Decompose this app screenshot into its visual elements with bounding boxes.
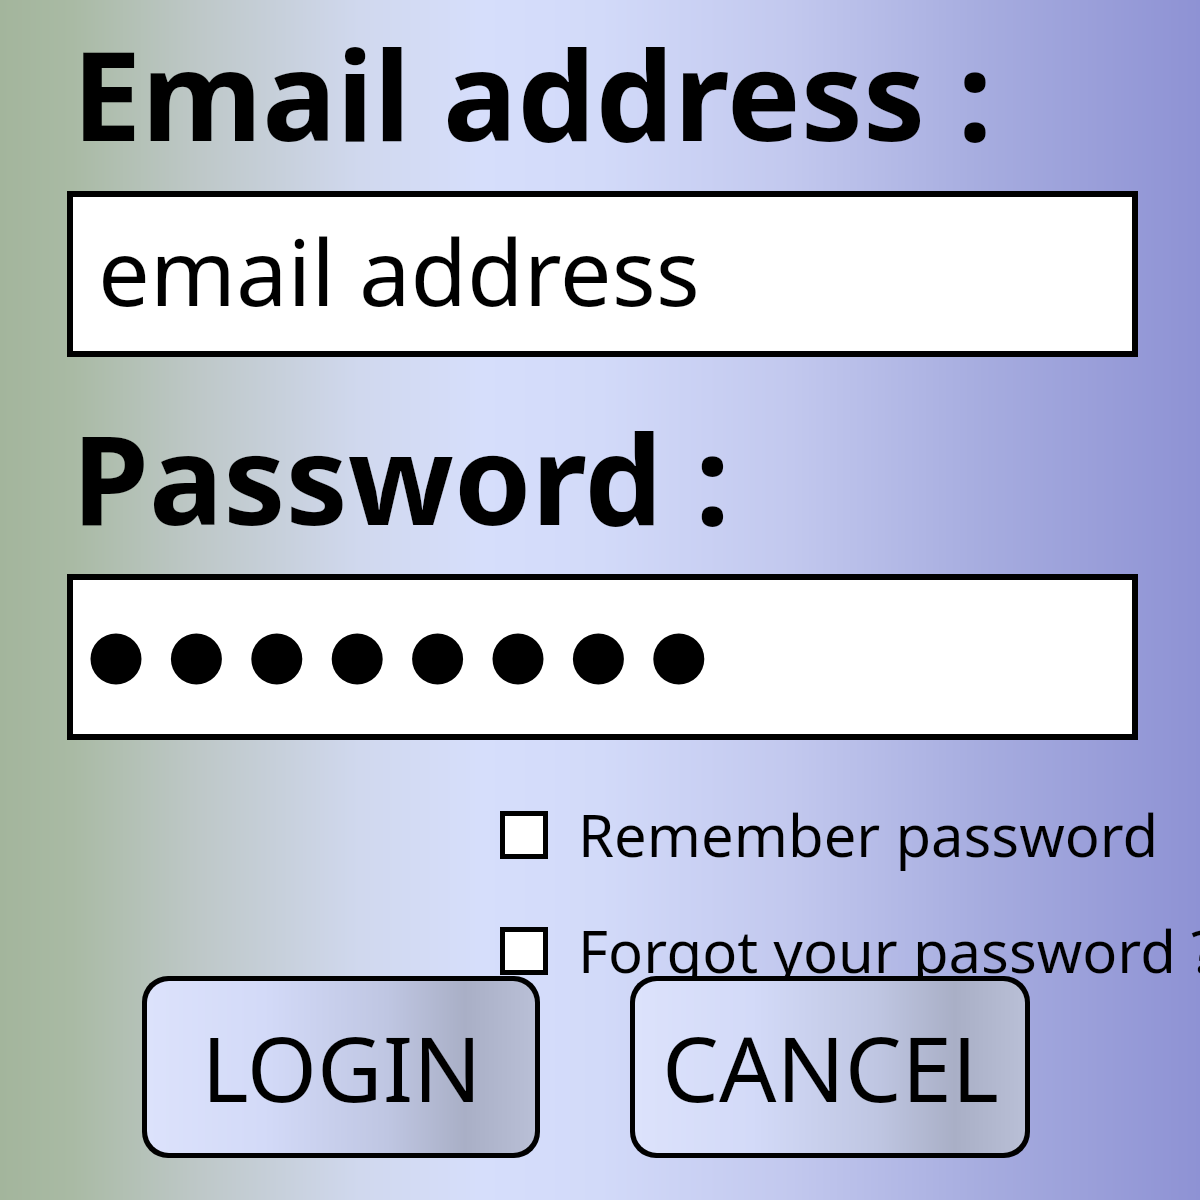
button[interactable]: LOGIN bbox=[147, 981, 535, 1153]
button[interactable]: Password input bbox=[73, 580, 1132, 734]
button[interactable]: Email address input bbox=[73, 197, 1132, 351]
button[interactable]: CANCEL bbox=[635, 981, 1025, 1153]
staticText: Forgot your password ? bbox=[578, 911, 1200, 990]
staticText: CANCEL bbox=[662, 1006, 999, 1129]
button[interactable]: Forgot your password ? bbox=[500, 911, 1200, 990]
staticText: LOGIN bbox=[201, 1006, 482, 1129]
staticText: email address bbox=[98, 208, 700, 333]
staticText: Remember password bbox=[578, 795, 1159, 874]
staticText: Password : bbox=[72, 392, 730, 561]
staticText: Email address : bbox=[72, 8, 993, 177]
button[interactable]: Remember password bbox=[500, 795, 1159, 874]
